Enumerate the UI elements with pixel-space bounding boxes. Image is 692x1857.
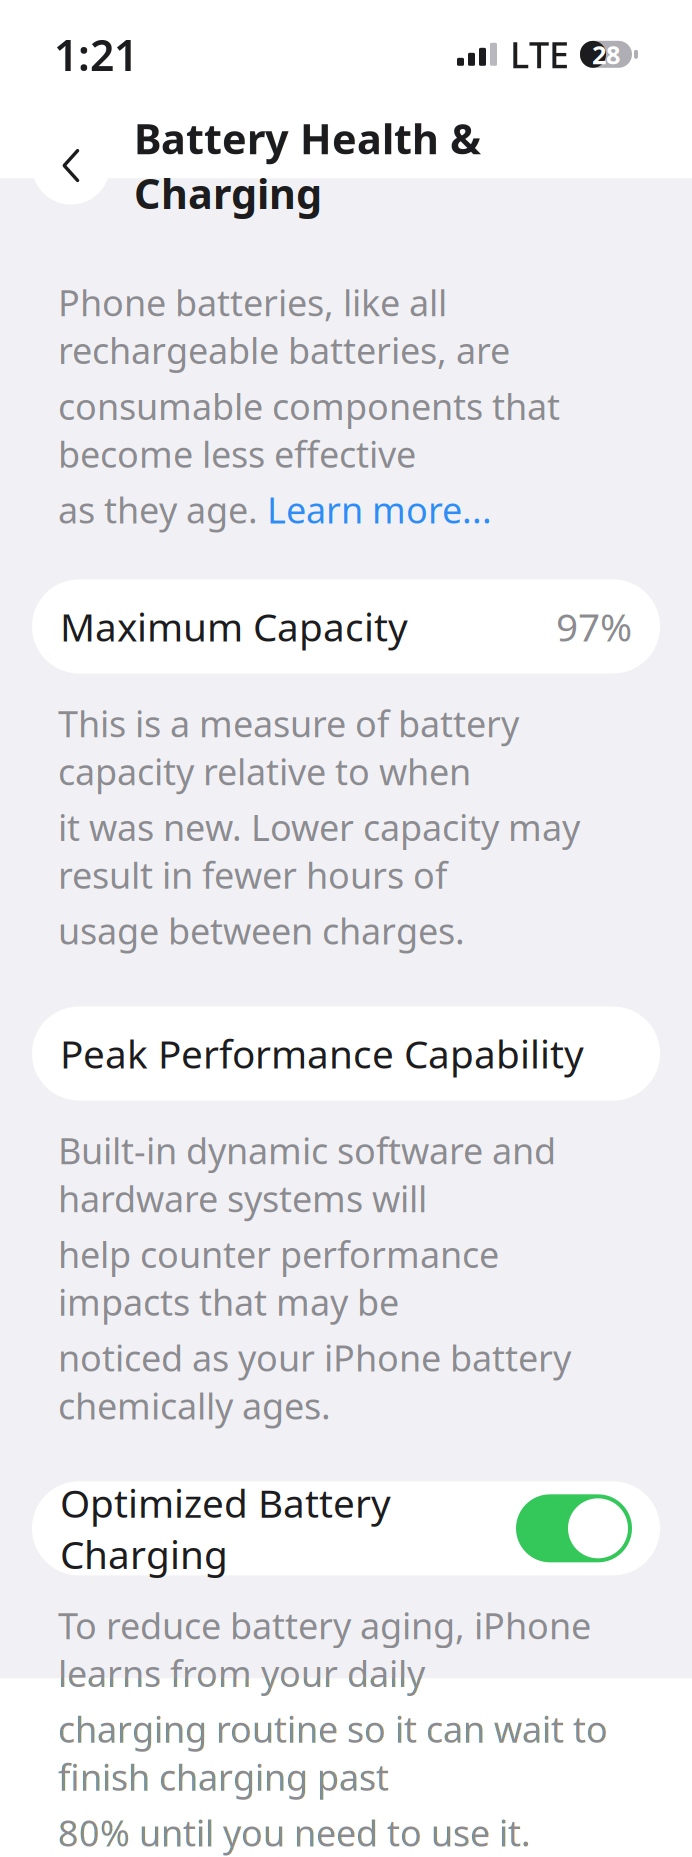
staticText: help counter performance impacts that ma… bbox=[58, 1230, 499, 1326]
staticText: 80% until you need to use it. bbox=[58, 1809, 531, 1856]
staticText: Built-in dynamic software and hardware s… bbox=[58, 1126, 556, 1222]
button[interactable]: Back bbox=[32, 126, 110, 204]
staticText: To reduce battery aging, iPhone learns f… bbox=[58, 1601, 591, 1697]
staticText: it was new. Lower capacity may result in… bbox=[58, 803, 580, 899]
staticText: charging routine so it can wait to finis… bbox=[58, 1705, 608, 1801]
staticText: 1:21 bbox=[54, 26, 138, 83]
staticText: as they age. bbox=[58, 486, 267, 533]
staticText: 97% bbox=[556, 601, 632, 652]
staticText: Peak Performance Capability bbox=[60, 1028, 584, 1079]
button[interactable]: Learn more... bbox=[267, 486, 492, 533]
staticText: consumable components that become less e… bbox=[58, 382, 560, 478]
staticText: usage between charges. bbox=[58, 907, 465, 954]
staticText: Maximum Capacity bbox=[60, 601, 408, 652]
staticText: This is a measure of battery capacity re… bbox=[58, 699, 519, 795]
staticText: Learn more... bbox=[267, 486, 492, 533]
staticText: LTE bbox=[510, 30, 569, 78]
staticText: Battery Health & Charging bbox=[134, 111, 481, 220]
staticText: noticed as your iPhone battery chemicall… bbox=[58, 1334, 571, 1429]
staticText: Optimized Battery Charging bbox=[60, 1477, 391, 1580]
button[interactable]: Optimized Battery Charging bbox=[32, 1481, 660, 1575]
staticText: 28 bbox=[592, 37, 620, 71]
staticText: Phone batteries, like all rechargeable b… bbox=[58, 278, 510, 374]
button[interactable]: Peak Performance Capability bbox=[32, 1006, 660, 1100]
